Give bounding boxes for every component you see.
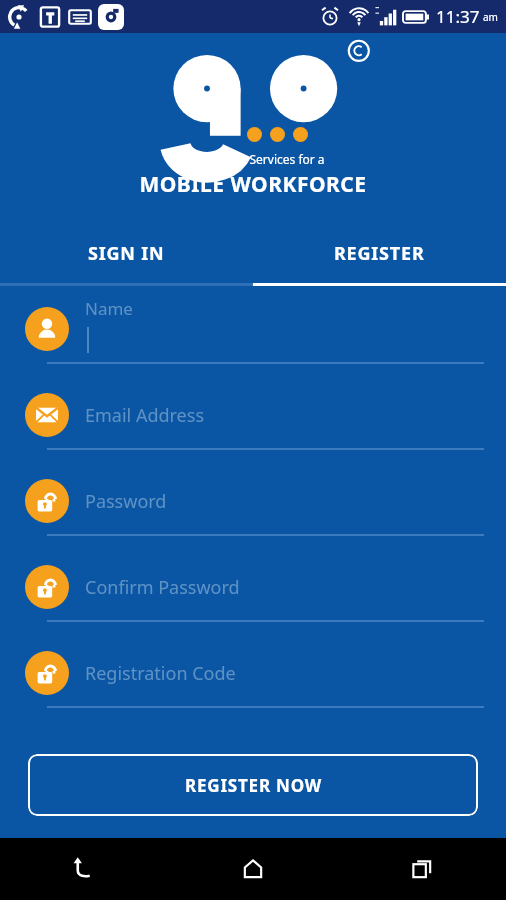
staticText: MOBILE WORKFORCE <box>139 170 367 199</box>
staticText: REGISTER NOW <box>185 774 322 797</box>
staticText: SIGN IN <box>88 241 165 266</box>
button[interactable]: Email Address <box>20 382 486 468</box>
staticText: Password <box>85 489 167 514</box>
button[interactable]: REGISTER <box>253 223 506 283</box>
staticText: Email Address <box>85 403 205 428</box>
button[interactable]: Back <box>0 838 168 900</box>
staticText: Registration Code <box>85 661 236 686</box>
button[interactable]: SIGN IN <box>0 223 253 283</box>
staticText: Destination Services for a <box>181 151 325 167</box>
staticText: am <box>483 10 498 24</box>
button[interactable]: Name <box>20 296 486 382</box>
button[interactable]: Confirm Password <box>20 554 486 640</box>
button[interactable]: Recent apps <box>337 838 506 900</box>
staticText: 11:37 <box>436 5 480 28</box>
staticText: Confirm Password <box>85 575 240 600</box>
button[interactable]: Password <box>20 468 486 554</box>
staticText: REGISTER <box>334 241 425 266</box>
button[interactable]: Home <box>168 838 337 900</box>
button[interactable]: REGISTER NOW <box>28 754 478 816</box>
staticText: Name <box>85 297 133 320</box>
button[interactable]: Registration Code <box>20 640 486 726</box>
